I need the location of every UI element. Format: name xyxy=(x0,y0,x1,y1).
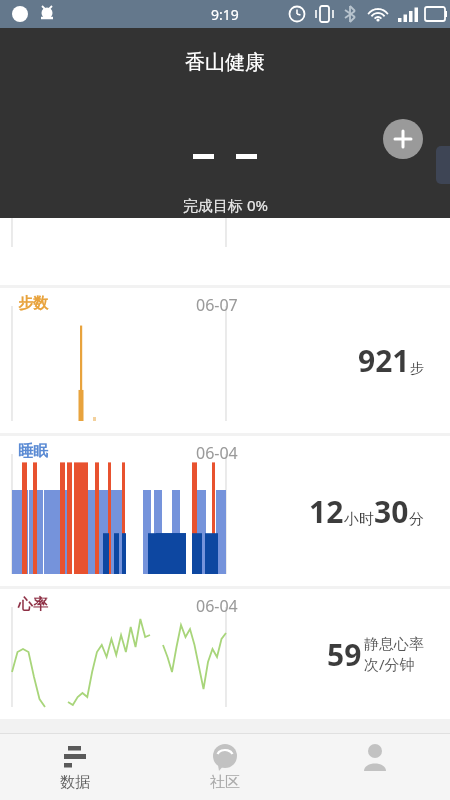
staticText: 921 xyxy=(358,340,410,381)
staticText: 睡眠 xyxy=(18,442,48,461)
staticText: 12 xyxy=(309,491,344,532)
staticText: 完成目标 0% xyxy=(183,195,268,215)
button[interactable]: 睡眠 xyxy=(0,436,450,586)
staticText: 9:19 xyxy=(211,5,239,24)
staticText: 30 xyxy=(374,491,409,532)
button[interactable]: 步数 xyxy=(0,288,450,433)
staticText: 静息心率 xyxy=(364,635,424,654)
button[interactable]: 94.6% xyxy=(0,28,450,285)
button[interactable]: 社区 xyxy=(150,734,300,800)
staticText: 步 xyxy=(410,360,424,378)
staticText: 心率 xyxy=(18,595,48,614)
staticText: 59 xyxy=(327,634,362,675)
staticText: 06-04 xyxy=(196,442,238,464)
button[interactable]: Add xyxy=(383,119,423,159)
staticText: 06-07 xyxy=(196,294,238,316)
button[interactable]: 心率 xyxy=(0,589,450,719)
staticText: 小时 xyxy=(344,510,374,529)
button[interactable]: 数据 xyxy=(0,734,150,800)
staticText: 94.6% xyxy=(300,22,376,57)
staticText: 分 xyxy=(409,510,424,529)
staticText: 数据 xyxy=(60,773,90,792)
staticText: 06-04 xyxy=(196,595,238,617)
staticText: 香山健康 xyxy=(185,50,265,75)
staticText: 次/分钟 xyxy=(364,654,415,674)
button[interactable]: Profile xyxy=(300,734,450,800)
staticText: 社区 xyxy=(210,773,240,792)
staticText: 步数 xyxy=(18,294,48,313)
